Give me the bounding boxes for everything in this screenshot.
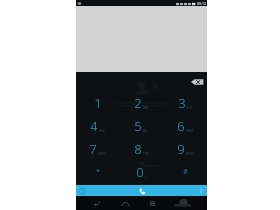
button[interactable]: 9 — [163, 137, 207, 160]
button[interactable]: Delete — [190, 76, 204, 88]
button[interactable]: Back — [90, 197, 104, 209]
button[interactable]: More options — [198, 186, 204, 196]
staticText: GHI — [99, 129, 105, 133]
staticText: 3 — [178, 94, 186, 112]
button[interactable]: * — [76, 160, 119, 183]
staticText: 4 — [90, 117, 98, 135]
button[interactable]: 7 — [76, 137, 119, 160]
staticText: WXYZ — [186, 152, 194, 156]
staticText: 5 — [134, 117, 142, 135]
staticText: ABC — [143, 106, 149, 110]
button[interactable]: Call — [135, 186, 149, 196]
button[interactable]: 0 — [119, 160, 163, 183]
button[interactable]: 2 — [119, 92, 163, 114]
staticText: 6 — [177, 117, 185, 135]
button[interactable]: Call history — [78, 187, 86, 195]
button[interactable]: Home — [118, 197, 132, 209]
staticText: JKL — [143, 129, 148, 133]
staticText: + — [145, 175, 147, 179]
staticText: 00:12 — [197, 1, 206, 6]
button[interactable]: 3 — [163, 92, 207, 114]
staticText: PQRS — [98, 152, 106, 156]
staticText: # — [183, 167, 188, 177]
staticText: 8 — [134, 140, 142, 158]
button[interactable]: 8 — [119, 137, 163, 160]
staticText: 1 — [94, 94, 102, 112]
staticText: DEF — [187, 106, 193, 110]
button[interactable]: 5 — [119, 114, 163, 137]
staticText: 0 — [136, 163, 144, 181]
button[interactable]: # — [163, 160, 207, 183]
staticText: 7 — [89, 140, 97, 158]
staticText: TUV — [143, 152, 149, 156]
button[interactable]: 1 — [76, 92, 119, 114]
staticText: 2 — [134, 94, 142, 112]
staticText: * — [96, 167, 100, 177]
staticText: MNO — [186, 129, 194, 133]
button[interactable]: 4 — [76, 114, 119, 137]
staticText: 9 — [177, 140, 185, 158]
button[interactable]: 6 — [163, 114, 207, 137]
button[interactable]: Recent apps — [145, 197, 159, 209]
